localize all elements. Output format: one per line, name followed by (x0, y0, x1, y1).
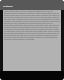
staticText: Lorem ipsum dolor sit amet consectetur a… (4, 10, 60, 40)
button[interactable]: Settings (0, 0, 64, 10)
staticText: Settings (3, 4, 13, 7)
